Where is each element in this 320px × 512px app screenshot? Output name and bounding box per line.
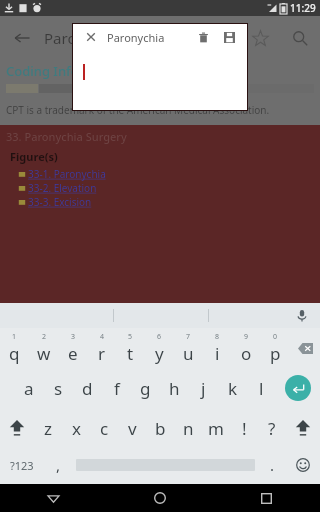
staticText: 6 — [157, 332, 162, 342]
button[interactable]: ? — [258, 408, 286, 448]
button[interactable]: Back — [0, 16, 44, 60]
button[interactable]: Recents — [213, 484, 320, 512]
button[interactable]: Save — [219, 27, 239, 47]
staticText: ? — [268, 417, 276, 440]
staticText: 5 — [128, 332, 133, 342]
button[interactable]: g — [131, 368, 160, 408]
staticText: b — [155, 417, 166, 440]
button[interactable]: 9 — [232, 328, 261, 368]
button[interactable]: Back — [0, 484, 106, 512]
button[interactable]: Favorite — [240, 18, 280, 58]
staticText: 9 — [244, 332, 249, 342]
staticText: ?123 — [10, 458, 34, 473]
staticText: z — [44, 417, 52, 440]
button[interactable]: l — [247, 368, 276, 408]
button[interactable]: 33-2. Elevation — [18, 181, 97, 195]
button[interactable]: d — [73, 368, 102, 408]
button[interactable]: 2 — [29, 328, 58, 368]
button[interactable]: f — [102, 368, 131, 408]
staticText: h — [169, 377, 180, 400]
button[interactable]: 5 — [116, 328, 145, 368]
button[interactable]: Shift — [286, 408, 320, 448]
button[interactable]: ?123 — [0, 448, 44, 482]
staticText: n — [183, 417, 194, 440]
staticText: 7 — [186, 332, 191, 342]
staticText: s — [54, 377, 63, 400]
button[interactable]: z — [34, 408, 62, 448]
button[interactable]: m — [202, 408, 230, 448]
staticText: k — [228, 377, 238, 400]
staticText: w — [37, 342, 51, 365]
button[interactable]: j — [189, 368, 218, 408]
button[interactable]: 7 — [174, 328, 203, 368]
button[interactable]: Delete — [193, 27, 213, 47]
staticText: 8 — [215, 332, 220, 342]
staticText: CPT is a trademark of the American Medic… — [6, 103, 270, 117]
staticText: c — [100, 417, 109, 440]
staticText: Figure(s) — [10, 149, 58, 164]
staticText: x — [72, 417, 81, 440]
staticText: r — [98, 342, 106, 365]
button[interactable]: Home — [106, 484, 213, 512]
staticText: 1 — [12, 332, 17, 342]
staticText: 33-2. Elevation — [28, 181, 97, 195]
button[interactable]: Emoji — [286, 448, 320, 482]
staticText: m — [208, 417, 224, 440]
staticText: 33. Paronychia Surgery — [6, 129, 127, 144]
staticText: o — [241, 342, 252, 365]
button[interactable]: n — [174, 408, 202, 448]
button[interactable]: Voice input — [292, 306, 312, 326]
button[interactable]: 8 — [203, 328, 232, 368]
staticText: ! — [242, 417, 247, 440]
button[interactable]: Close — [81, 27, 101, 47]
button[interactable]: Shift — [0, 408, 34, 448]
button[interactable]: Backspace — [290, 328, 320, 368]
staticText: y — [155, 342, 164, 365]
staticText: f — [114, 377, 120, 400]
button[interactable]: , — [44, 448, 72, 482]
button[interactable]: v — [118, 408, 146, 448]
staticText: 0 — [273, 332, 278, 342]
button[interactable]: x — [62, 408, 90, 448]
button[interactable]: b — [146, 408, 174, 448]
staticText: d — [82, 377, 93, 400]
staticText: l — [259, 377, 264, 400]
staticText: Paronychia Surgery — [107, 30, 193, 45]
staticText: q — [9, 342, 20, 365]
button[interactable]: s — [44, 368, 73, 408]
button[interactable]: k — [218, 368, 247, 408]
staticText: t — [127, 342, 134, 365]
staticText: Coding Information... — [6, 62, 140, 80]
staticText: p — [270, 342, 281, 365]
staticText: g — [140, 377, 151, 400]
staticText: e — [68, 342, 78, 365]
staticText: j — [201, 377, 206, 400]
staticText: a — [24, 377, 34, 400]
staticText: v — [128, 417, 137, 440]
staticText: . — [270, 455, 275, 475]
button[interactable]: Search — [280, 18, 320, 58]
staticText: 33-1. Paronychia — [28, 167, 106, 181]
staticText: 2 — [42, 332, 47, 342]
staticText: 33-3. Excision — [28, 195, 92, 209]
staticText: , — [56, 455, 61, 475]
button[interactable]: a — [14, 368, 44, 408]
button[interactable]: 33-3. Excision — [18, 195, 92, 209]
button[interactable]: c — [90, 408, 118, 448]
button[interactable]: h — [160, 368, 189, 408]
staticText: Paronychia Surgery — [44, 28, 240, 48]
button[interactable]: Enter — [276, 368, 320, 408]
button[interactable]: ! — [230, 408, 258, 448]
staticText: 3 — [71, 332, 76, 342]
button[interactable]: 4 — [87, 328, 116, 368]
staticText: 4 — [100, 332, 105, 342]
button[interactable]: . — [258, 448, 286, 482]
button[interactable]: 6 — [145, 328, 174, 368]
staticText: u — [183, 342, 194, 365]
button[interactable]: 1 — [0, 328, 29, 368]
button[interactable]: Space — [72, 448, 258, 482]
staticText: 11:29 — [290, 1, 316, 15]
button[interactable]: 33-1. Paronychia — [18, 167, 106, 181]
button[interactable]: 3 — [58, 328, 87, 368]
button[interactable]: 0 — [261, 328, 290, 368]
